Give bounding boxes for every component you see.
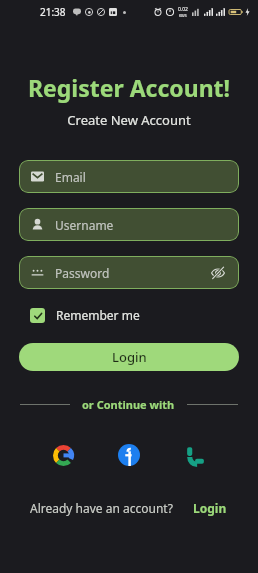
staticText: Remember me (56, 307, 140, 323)
staticText: or Continue with (82, 397, 175, 412)
button[interactable]: Continue with Facebook (114, 440, 144, 470)
staticText: Email (55, 169, 227, 185)
button[interactable]: Password (19, 256, 239, 289)
button[interactable]: Login (191, 498, 229, 518)
staticText: Already have an account? (30, 500, 173, 516)
button[interactable]: Continue with Phone (180, 440, 210, 470)
staticText: Login (112, 348, 147, 366)
staticText: Register Account! (0, 72, 258, 103)
button[interactable]: Continue with Google (48, 440, 78, 470)
button[interactable]: Login (19, 343, 239, 371)
staticText: 0.02 (178, 6, 188, 13)
staticText: 21:38 (40, 5, 66, 19)
button[interactable]: Toggle password visibility (209, 264, 227, 282)
staticText: Username (55, 217, 227, 233)
staticText: Login (193, 500, 227, 516)
button[interactable]: Remember me (28, 303, 142, 327)
button[interactable]: Username (19, 208, 239, 241)
staticText: KB/S (179, 13, 187, 18)
staticText: Password (55, 265, 209, 281)
button[interactable]: Email (19, 160, 239, 193)
staticText: Create New Account (0, 111, 258, 129)
